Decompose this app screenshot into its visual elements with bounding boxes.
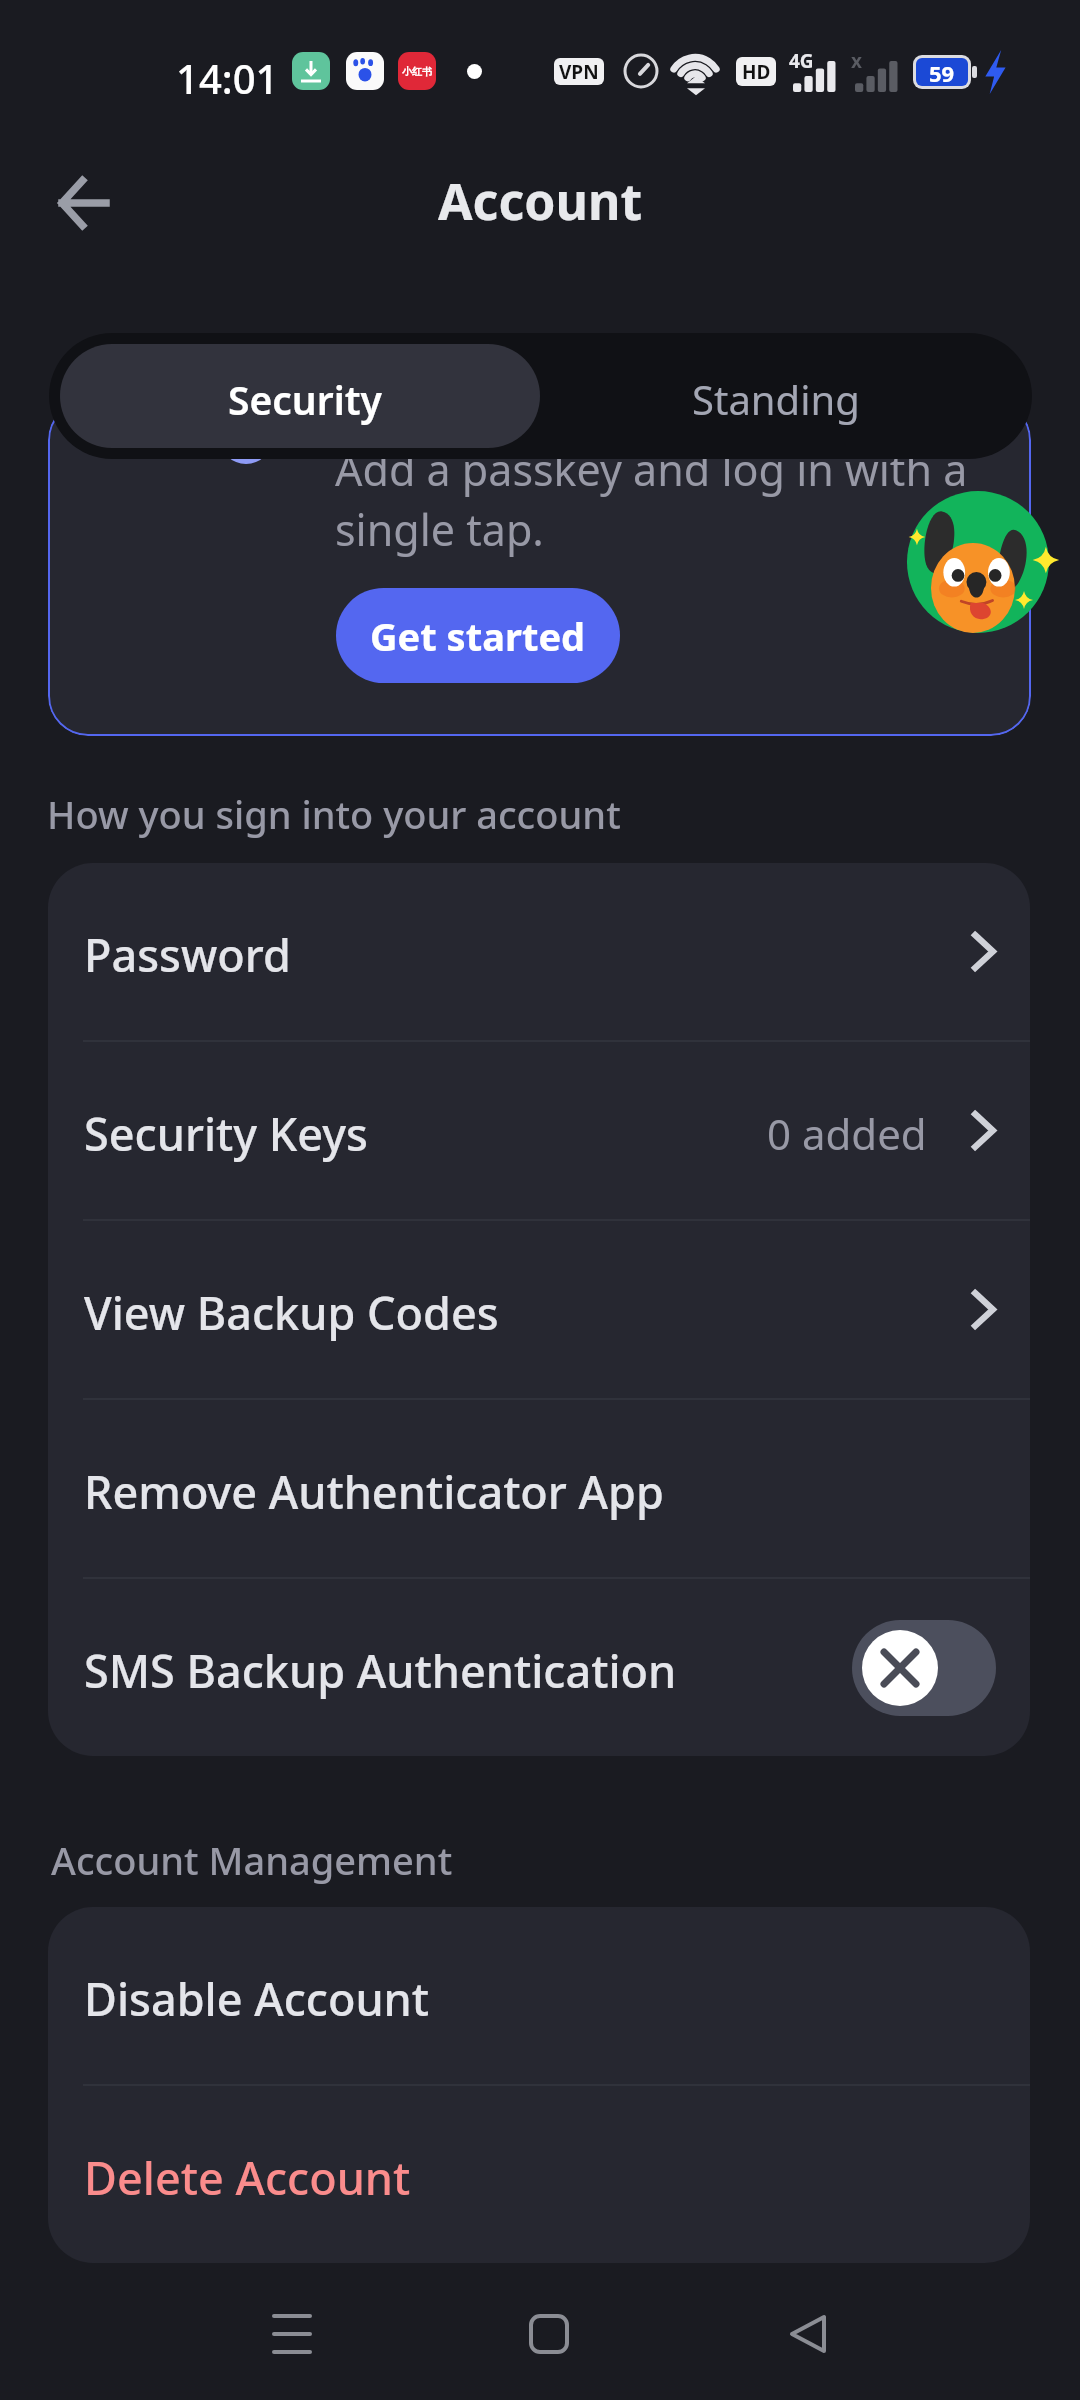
staticText: View Backup Codes bbox=[84, 1282, 499, 1343]
staticText: 小红书 bbox=[402, 65, 432, 78]
staticText: Remove Authenticator App bbox=[84, 1461, 664, 1522]
staticText: 4G bbox=[789, 48, 814, 74]
staticText: Delete Account bbox=[84, 2147, 411, 2208]
button[interactable]: Password bbox=[48, 863, 1030, 1040]
staticText: Security Keys bbox=[84, 1103, 368, 1164]
staticText: VPN bbox=[559, 59, 599, 85]
button[interactable]: Security bbox=[60, 344, 540, 448]
staticText: SMS Backup Authentication bbox=[84, 1640, 677, 1701]
staticText: Security bbox=[228, 373, 382, 426]
button[interactable]: Home bbox=[505, 2290, 593, 2378]
button[interactable]: Back bbox=[764, 2290, 852, 2378]
staticText: x bbox=[851, 48, 862, 74]
button[interactable]: Get started bbox=[336, 588, 620, 683]
staticText: How you sign into your account bbox=[47, 788, 621, 840]
staticText: Add a passkey and log in with a single t… bbox=[335, 440, 968, 559]
button[interactable]: Delete Account bbox=[48, 2086, 1030, 2263]
staticText: Standing bbox=[692, 372, 860, 426]
button[interactable]: Add a passkey and log in with a single t… bbox=[48, 400, 1031, 736]
staticText: Disable Account bbox=[84, 1968, 430, 2029]
button[interactable]: Remove Authenticator App bbox=[48, 1400, 1030, 1577]
staticText: Password bbox=[84, 924, 291, 985]
button[interactable]: Standing bbox=[540, 344, 1021, 448]
staticText: Account Management bbox=[51, 1834, 453, 1886]
button[interactable]: SMS Backup Authentication bbox=[48, 1579, 1030, 1756]
staticText: HD bbox=[742, 59, 771, 85]
staticText: 59 bbox=[929, 58, 955, 86]
button[interactable]: Security Keys bbox=[48, 1042, 1030, 1219]
button[interactable]: Back bbox=[46, 165, 122, 241]
button[interactable]: Recent apps bbox=[248, 2290, 336, 2378]
button[interactable]: Disable Account bbox=[48, 1907, 1030, 2084]
staticText: Account bbox=[438, 167, 643, 235]
staticText: Get started bbox=[370, 610, 586, 662]
button[interactable]: View Backup Codes bbox=[48, 1221, 1030, 1398]
staticText: 14:01 bbox=[176, 51, 279, 105]
staticText: 0 added bbox=[767, 1105, 927, 1162]
button[interactable]: SMS Backup Authentication bbox=[852, 1620, 996, 1716]
